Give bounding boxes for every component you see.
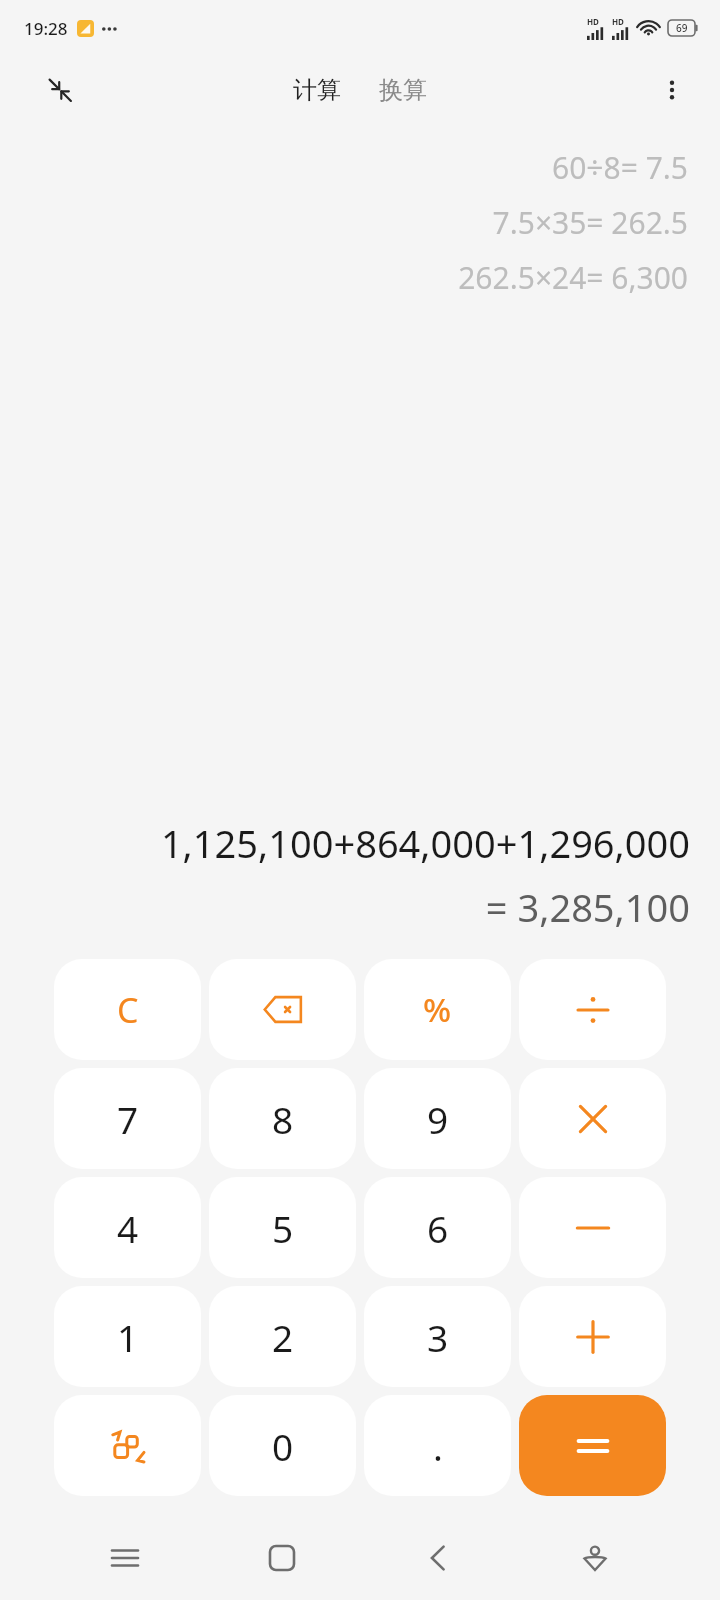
staticText: 19:28 — [24, 17, 68, 40]
button[interactable]: 9 — [364, 1068, 511, 1169]
staticText: 换算 — [379, 75, 427, 105]
button[interactable]: Back — [406, 1526, 470, 1590]
staticText: 69 — [676, 21, 688, 35]
button[interactable]: 5 — [209, 1177, 356, 1278]
button[interactable]: 换算 — [373, 69, 433, 111]
button[interactable]: Assistant — [563, 1526, 627, 1590]
button[interactable]: More options — [650, 68, 694, 112]
staticText: 7.5×35= 262.5 — [492, 202, 688, 243]
button[interactable]: Equals — [519, 1395, 666, 1496]
button[interactable]: 4 — [54, 1177, 201, 1278]
button[interactable]: Unit conversion — [54, 1395, 201, 1496]
button[interactable]: 262.5×24= 6,300 — [458, 250, 688, 305]
button[interactable]: 6 — [364, 1177, 511, 1278]
button[interactable]: 0 — [209, 1395, 356, 1496]
button[interactable]: Minus — [519, 1177, 666, 1278]
button[interactable]: Divide — [519, 959, 666, 1060]
button[interactable]: 计算 — [287, 69, 347, 111]
staticText: 8 — [272, 1094, 294, 1144]
button[interactable]: Collapse — [38, 68, 82, 112]
staticText: 0 — [272, 1421, 294, 1471]
button[interactable]: Percent — [364, 959, 511, 1060]
staticText: 262.5×24= 6,300 — [458, 257, 688, 298]
button[interactable]: 7.5×35= 262.5 — [492, 195, 688, 250]
staticText: C — [117, 987, 139, 1033]
button[interactable]: Plus — [519, 1286, 666, 1387]
staticText: 60÷8= 7.5 — [552, 147, 688, 188]
button[interactable]: 3 — [364, 1286, 511, 1387]
button[interactable]: 1 — [54, 1286, 201, 1387]
staticText: 3 — [427, 1312, 449, 1362]
staticText: 2 — [272, 1312, 294, 1362]
staticText: 4 — [117, 1203, 139, 1253]
button[interactable]: 7 — [54, 1068, 201, 1169]
button[interactable]: Clear — [54, 959, 201, 1060]
staticText: = 3,285,100 — [485, 881, 690, 933]
staticText: HD — [587, 16, 599, 27]
staticText: 1 — [117, 1312, 139, 1362]
button[interactable]: Recents — [93, 1526, 157, 1590]
staticText: 6 — [427, 1203, 449, 1253]
staticText: 1,125,100+864,000+1,296,000 — [160, 817, 690, 869]
button[interactable]: Home — [250, 1526, 314, 1590]
button[interactable]: 8 — [209, 1068, 356, 1169]
staticText: 计算 — [293, 75, 341, 105]
staticText: 9 — [427, 1094, 449, 1144]
staticText: 5 — [272, 1203, 294, 1253]
staticText: 7 — [117, 1094, 139, 1144]
staticText: . — [433, 1421, 443, 1471]
button[interactable]: 60÷8= 7.5 — [552, 140, 688, 195]
button[interactable]: 2 — [209, 1286, 356, 1387]
staticText: HD — [612, 16, 624, 27]
button[interactable]: Multiply — [519, 1068, 666, 1169]
button[interactable]: . — [364, 1395, 511, 1496]
staticText: % — [423, 987, 452, 1032]
button[interactable]: Backspace — [209, 959, 356, 1060]
